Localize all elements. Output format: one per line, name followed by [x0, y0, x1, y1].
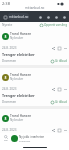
staticText: 24.8. 2023: [2, 87, 17, 91]
button[interactable]: Save: [57, 128, 61, 132]
staticText: Trond Hansen: [10, 32, 32, 36]
staticText: 24.8. 2023: [2, 46, 17, 50]
button[interactable]: Gi tilbud: [51, 59, 67, 63]
staticText: Drammen: [2, 59, 17, 63]
staticText: Trenger elektriker: [2, 93, 35, 98]
button[interactable]: Share: [51, 128, 55, 132]
button[interactable]: Tabs: [52, 13, 60, 21]
staticText: Drammen: [2, 100, 17, 104]
staticText: Ny bruker: [10, 77, 24, 81]
button[interactable]: Tabs: [2, 14, 8, 20]
button[interactable]: More: [63, 46, 67, 50]
staticText: Ny jobb i nærheten: [19, 135, 45, 139]
staticText: Gi tilbud: [55, 100, 67, 104]
staticText: Nyeste: [2, 23, 13, 27]
staticText: Opprett varsling: [44, 23, 67, 27]
button[interactable]: Share: [51, 87, 55, 91]
button[interactable]: More: [63, 128, 67, 132]
staticText: Gi tilbud: [55, 59, 67, 63]
staticText: Trond Hansen: [10, 114, 32, 118]
button[interactable]: Search: [0, 135, 11, 142]
button[interactable]: Gi tilbud: [51, 100, 67, 104]
button[interactable]: Opprett varsling: [40, 23, 67, 27]
staticText: Drammen: [19, 139, 31, 142]
button[interactable]: Reload: [44, 13, 52, 21]
button[interactable]: Save: [57, 46, 61, 50]
button[interactable]: More: [60, 13, 68, 21]
staticText: Trenger elektriker: [2, 52, 35, 57]
staticText: Ny bruker: [10, 118, 24, 122]
button[interactable]: Share: [51, 46, 55, 50]
staticText: mittanbud.no: [25, 6, 45, 10]
staticText: 24.8. 2023: [2, 128, 17, 132]
staticText: Søk: [4, 139, 8, 142]
button[interactable]: mittanbud.no: [8, 13, 29, 20]
staticText: mittanbud.no: [9, 15, 29, 19]
staticText: 2:38: [2, 1, 10, 6]
button[interactable]: Save: [57, 87, 61, 91]
staticText: Trond Hansen: [10, 73, 32, 77]
staticText: Ny bruker: [10, 36, 24, 40]
button[interactable]: More: [63, 87, 67, 91]
button[interactable]: Lock: [36, 13, 44, 21]
